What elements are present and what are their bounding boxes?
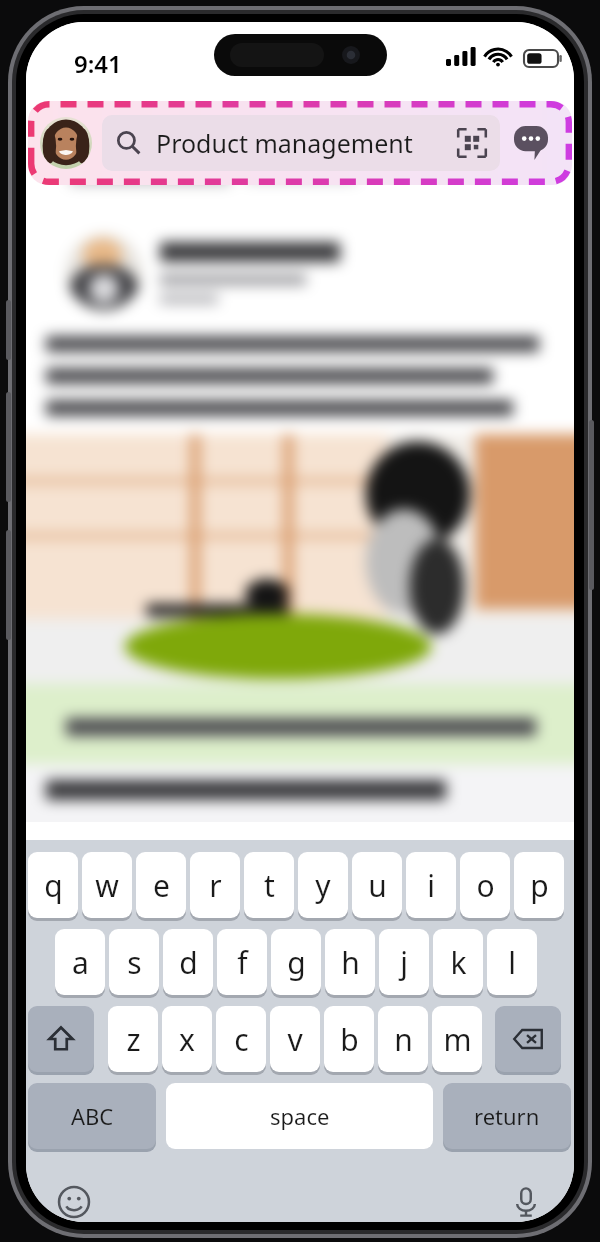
button[interactable]: c — [216, 1006, 266, 1072]
staticText: b — [340, 1019, 359, 1060]
button[interactable]: Dictation — [504, 1180, 548, 1222]
staticText: m — [443, 1019, 472, 1060]
staticText: return — [474, 1101, 540, 1131]
button[interactable]: y — [298, 852, 348, 918]
button[interactable]: w — [82, 852, 132, 918]
staticText: i — [427, 865, 435, 906]
button[interactable]: Shift — [28, 1006, 94, 1072]
staticText: space — [270, 1101, 330, 1131]
button[interactable]: p — [514, 852, 564, 918]
button[interactable]: i — [406, 852, 456, 918]
staticText: w — [95, 865, 119, 906]
button[interactable]: space — [166, 1083, 433, 1149]
button[interactable]: n — [378, 1006, 428, 1072]
button[interactable]: r — [190, 852, 240, 918]
button[interactable]: f — [217, 929, 267, 995]
button[interactable]: k — [433, 929, 483, 995]
staticText: p — [530, 865, 549, 906]
staticText: s — [127, 942, 142, 983]
button[interactable]: Messaging — [508, 120, 554, 166]
button[interactable]: b — [324, 1006, 374, 1072]
button[interactable]: h — [325, 929, 375, 995]
staticText: t — [264, 865, 275, 906]
staticText: f — [237, 942, 248, 983]
button[interactable]: Backspace — [495, 1006, 561, 1072]
staticText: g — [287, 942, 306, 983]
button[interactable]: x — [162, 1006, 212, 1072]
staticText: n — [394, 1019, 413, 1060]
button[interactable]: Profile — [40, 117, 92, 169]
button[interactable]: u — [352, 852, 402, 918]
staticText: k — [450, 942, 467, 983]
button[interactable]: m — [432, 1006, 482, 1072]
button[interactable]: z — [108, 1006, 158, 1072]
staticText: e — [153, 865, 170, 906]
button[interactable]: Scan QR code — [450, 121, 494, 165]
staticText: u — [368, 865, 387, 906]
button[interactable]: g — [271, 929, 321, 995]
staticText: h — [341, 942, 360, 983]
button[interactable]: v — [270, 1006, 320, 1072]
staticText: z — [126, 1019, 141, 1060]
staticText: c — [234, 1019, 249, 1060]
button[interactable]: o — [460, 852, 510, 918]
button[interactable]: l — [487, 929, 537, 995]
staticText: v — [287, 1019, 303, 1060]
staticText: d — [179, 942, 198, 983]
button[interactable]: Product management — [102, 115, 500, 171]
staticText: Product management — [156, 126, 413, 160]
button[interactable]: s — [109, 929, 159, 995]
staticText: a — [72, 942, 89, 983]
staticText: q — [44, 865, 63, 906]
button[interactable]: Emoji — [52, 1180, 96, 1222]
staticText: l — [508, 942, 516, 983]
staticText: ABC — [71, 1101, 114, 1131]
staticText: 9:41 — [74, 47, 122, 80]
button[interactable]: t — [244, 852, 294, 918]
button[interactable]: ABC — [28, 1083, 156, 1149]
staticText: o — [476, 865, 495, 906]
staticText: r — [209, 865, 222, 906]
staticText: j — [400, 942, 408, 983]
staticText: y — [315, 865, 331, 906]
staticText: x — [179, 1019, 195, 1060]
button[interactable]: e — [136, 852, 186, 918]
button[interactable]: j — [379, 929, 429, 995]
button[interactable]: d — [163, 929, 213, 995]
button[interactable]: a — [55, 929, 105, 995]
button[interactable]: q — [28, 852, 78, 918]
button[interactable]: return — [443, 1083, 571, 1149]
